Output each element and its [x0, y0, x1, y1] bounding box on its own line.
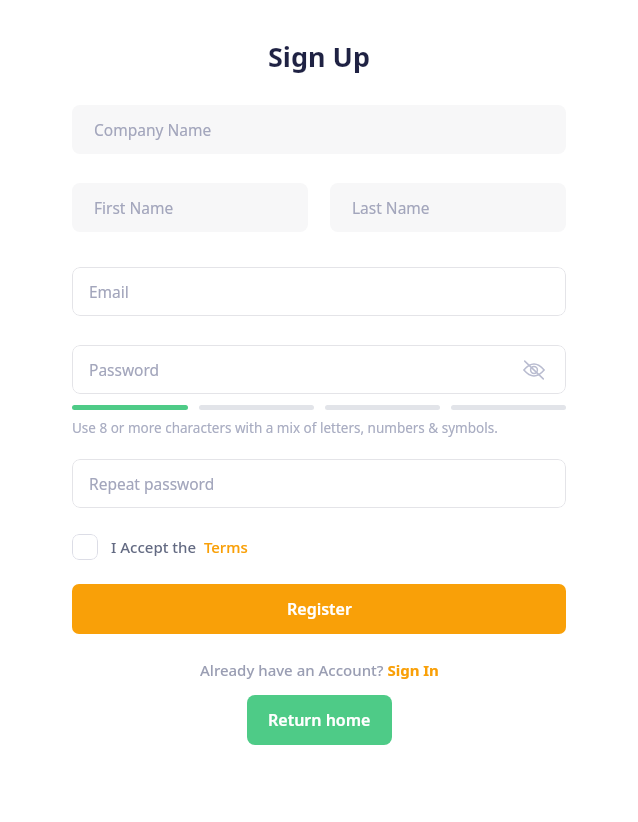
button[interactable]: Register: [72, 584, 566, 634]
button[interactable]: Company Name: [72, 105, 566, 154]
staticText: Sign Up: [0, 38, 638, 75]
staticText: Return home: [268, 709, 371, 731]
button[interactable]: Return home: [247, 695, 392, 745]
staticText: Use 8 or more characters with a mix of l…: [72, 419, 498, 437]
staticText: Email: [89, 281, 129, 302]
button[interactable]: Show password: [519, 355, 549, 385]
staticText: I Accept the Terms: [111, 537, 248, 557]
staticText: Last Name: [352, 197, 430, 218]
staticText: Repeat password: [89, 473, 215, 494]
button[interactable]: Password: [72, 345, 566, 394]
staticText: Password: [89, 359, 160, 380]
button[interactable]: Already have an Account? Sign In: [200, 660, 439, 680]
staticText: Company Name: [94, 119, 212, 140]
button[interactable]: Repeat password: [72, 459, 566, 508]
staticText: Already have an Account? Sign In: [200, 660, 439, 680]
button[interactable]: Last Name: [330, 183, 566, 232]
button[interactable]: Email: [72, 267, 566, 316]
staticText: First Name: [94, 197, 174, 218]
button[interactable]: First Name: [72, 183, 308, 232]
staticText: Register: [287, 598, 352, 620]
button[interactable]: I Accept the Terms: [72, 530, 248, 564]
